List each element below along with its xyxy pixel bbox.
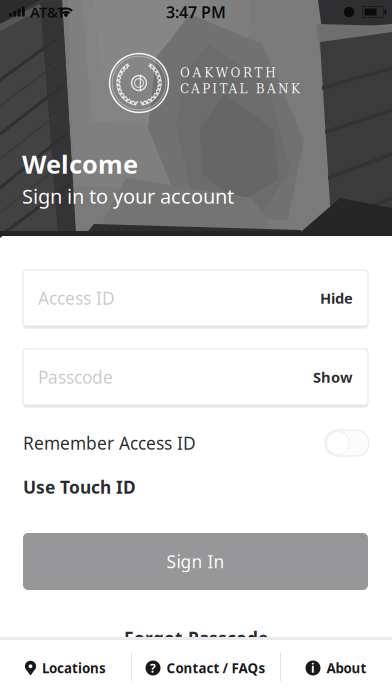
staticText: Hide [320, 288, 353, 308]
staticText: CAPITAL BANK [180, 82, 300, 96]
button[interactable]: ? [131, 641, 280, 695]
button[interactable]: Remember Access ID [325, 430, 369, 456]
staticText: Use Touch ID [23, 475, 136, 498]
staticText: Passcode [38, 365, 113, 388]
staticText: Remember Access ID [23, 431, 196, 454]
staticText: 3:47 PM [166, 1, 226, 23]
staticText: Show [313, 367, 353, 387]
button[interactable]: Sign In [23, 533, 368, 590]
button[interactable]: i [280, 641, 392, 695]
staticText: Access ID [38, 286, 115, 309]
staticText: About [326, 659, 366, 677]
staticText: OAKWORTH [180, 66, 275, 80]
button[interactable]: Use Touch ID [23, 476, 183, 498]
staticText: Forgot Passcode [124, 626, 268, 649]
button[interactable]: Forgot Passcode [116, 628, 276, 648]
staticText: i [311, 660, 315, 676]
button[interactable]: Hide [291, 270, 353, 326]
staticText: Locations [42, 659, 106, 677]
button[interactable]: Locations [0, 641, 131, 695]
staticText: Welcome [22, 147, 138, 181]
staticText: Sign In [166, 550, 224, 573]
staticText: AT&T [30, 2, 65, 22]
staticText: Sign in to your account [22, 183, 234, 209]
staticText: Contact / FAQs [166, 659, 265, 677]
staticText: ? [150, 660, 156, 676]
button[interactable]: Show [291, 349, 353, 405]
